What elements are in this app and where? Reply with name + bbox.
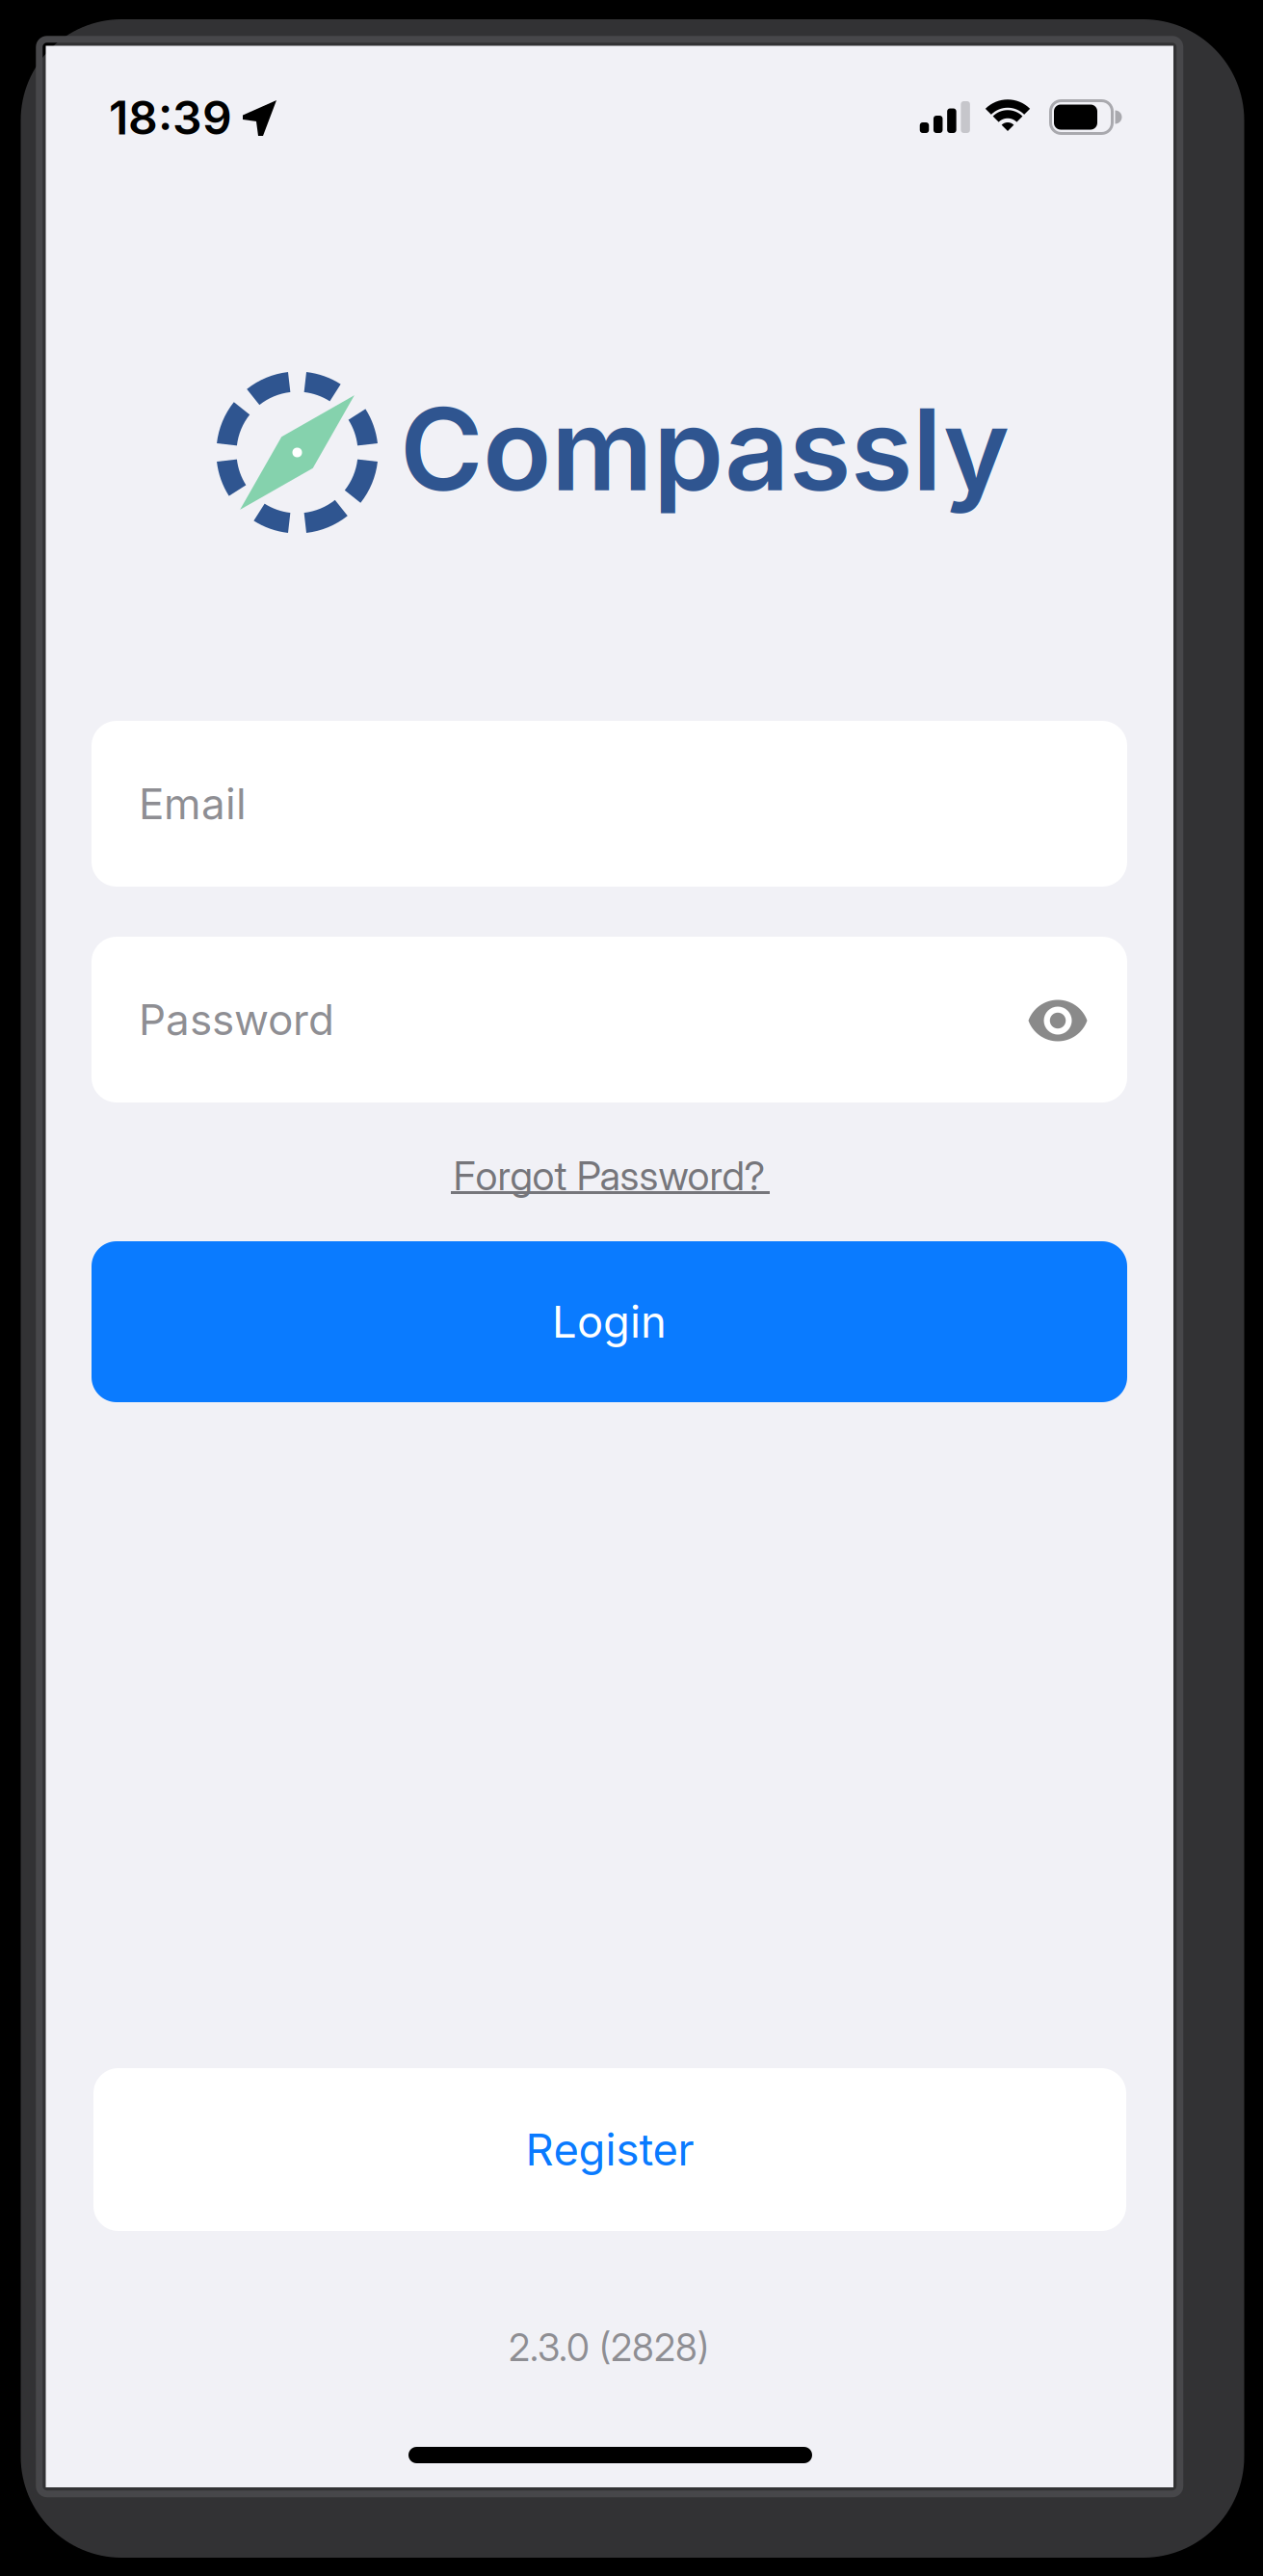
staticText: 2.3.0 (2828)	[509, 2326, 709, 2370]
staticText: Password	[139, 995, 334, 1045]
staticText: Email	[139, 779, 247, 829]
staticText: Forgot Password?	[453, 1152, 765, 1199]
button[interactable]: Forgot Password?	[0, 0, 1263, 2576]
button[interactable]: Email	[92, 721, 1127, 887]
staticText: 18:39	[109, 90, 232, 145]
button[interactable]: Password	[92, 937, 1127, 1102]
staticText: Compassly	[400, 382, 1010, 516]
button[interactable]: Register	[93, 2068, 1126, 2231]
staticText: Register	[526, 2124, 694, 2175]
button[interactable]: Login	[92, 1241, 1127, 1402]
staticText: Login	[552, 1296, 667, 1348]
button[interactable]: Show password	[1014, 977, 1101, 1064]
